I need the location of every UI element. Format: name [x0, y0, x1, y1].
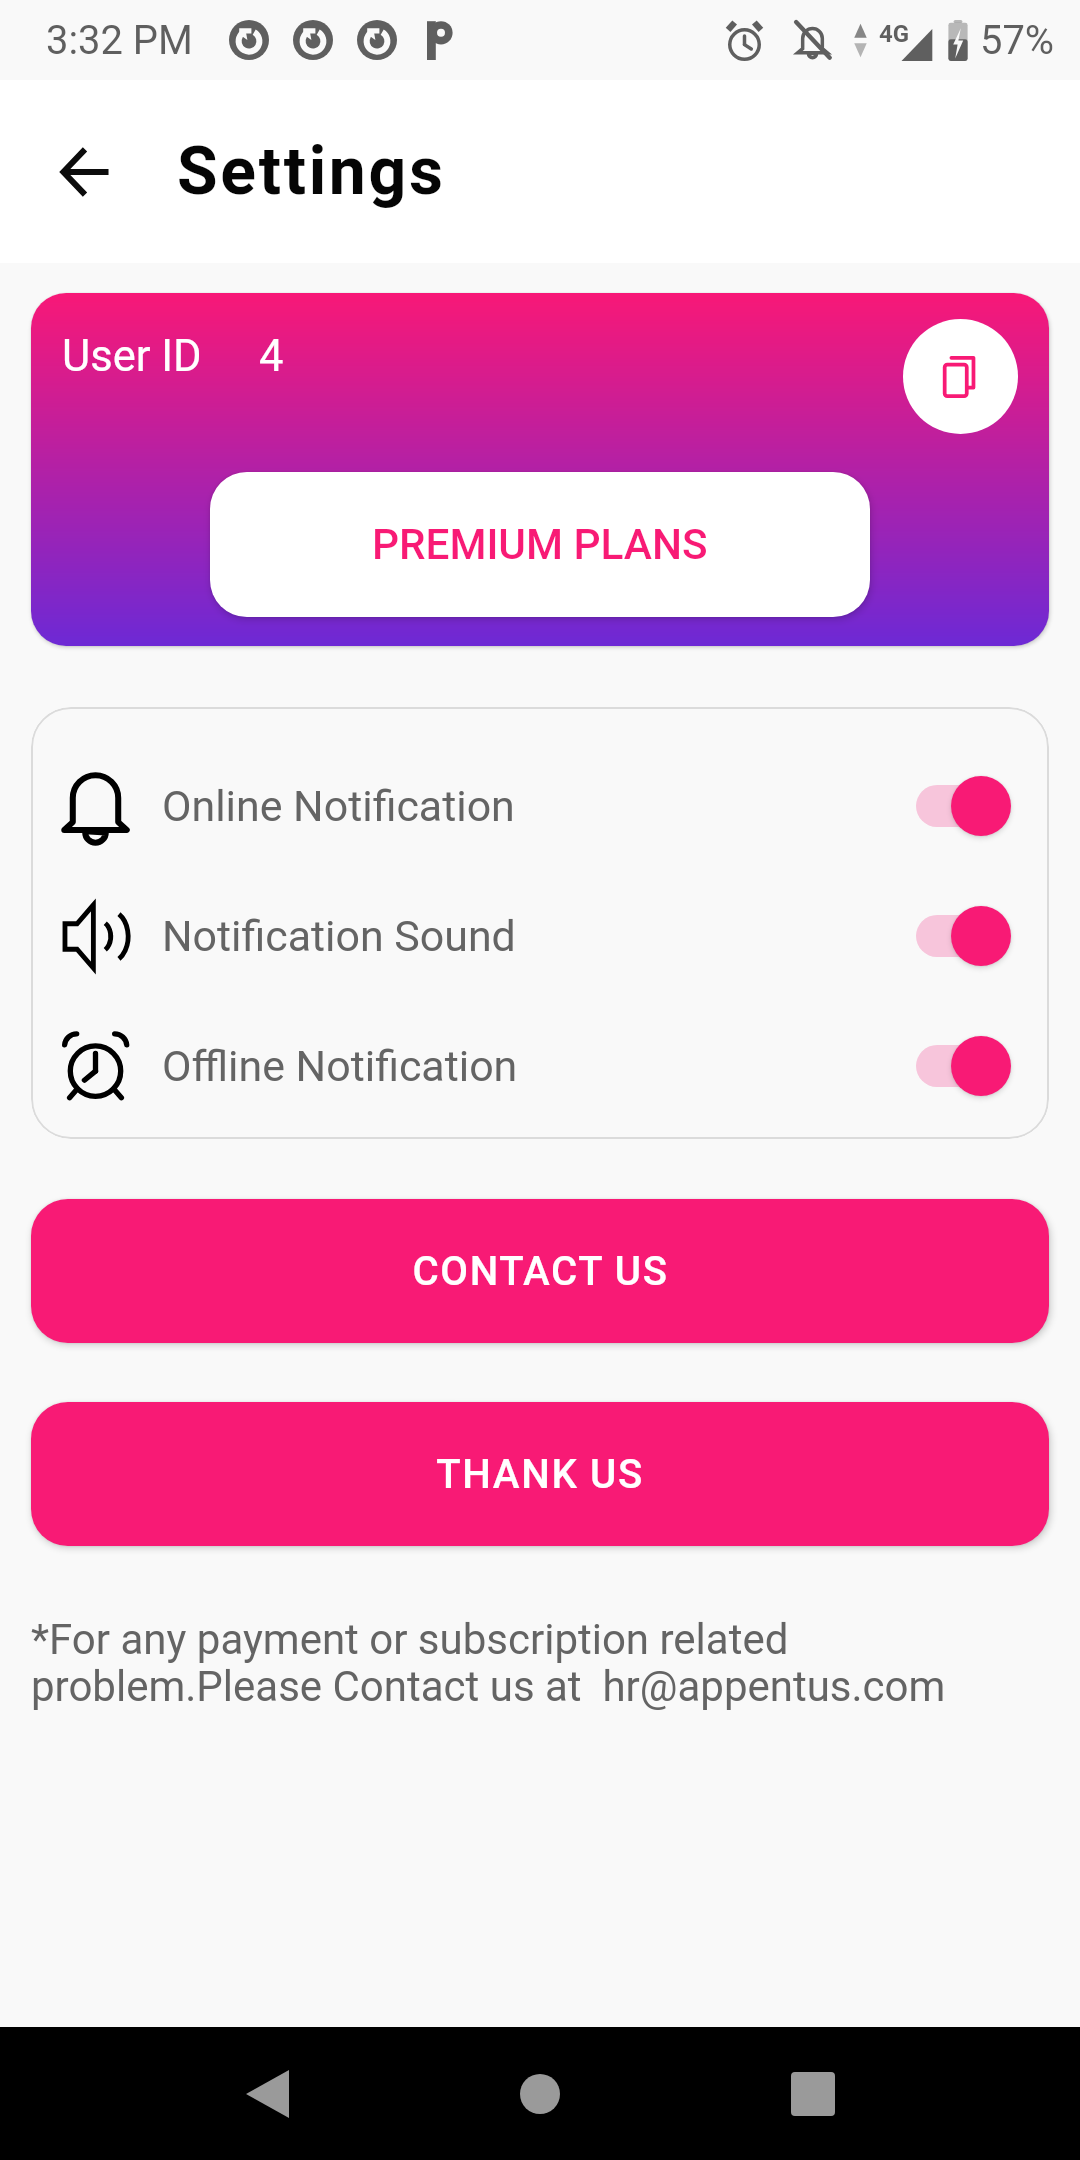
staticText: User ID — [62, 331, 202, 382]
button[interactable]: Toggle Online Notification — [916, 776, 1012, 836]
button[interactable]: Back — [201, 2028, 333, 2160]
staticText: Settings — [177, 133, 446, 210]
button[interactable]: Toggle Notification Sound — [916, 906, 1012, 966]
staticText: Offline Notification — [162, 1041, 518, 1091]
staticText: CONTACT US — [412, 1248, 669, 1295]
button[interactable]: Toggle Offline Notification — [916, 1036, 1012, 1096]
staticText: 4G — [879, 20, 910, 48]
button[interactable]: PREMIUM PLANS — [210, 472, 870, 617]
button[interactable]: Online Notification — [31, 741, 1049, 871]
button[interactable]: THANK US — [31, 1402, 1049, 1546]
staticText: 3:32 PM — [46, 17, 193, 64]
staticText: Online Notification — [162, 781, 515, 831]
button[interactable]: Back — [46, 133, 124, 211]
staticText: Notification Sound — [162, 911, 516, 961]
staticText: 57% — [980, 17, 1055, 64]
button[interactable]: Offline Notification — [31, 1001, 1049, 1131]
staticText: PREMIUM PLANS — [372, 520, 708, 570]
button[interactable]: Copy user ID — [903, 319, 1018, 434]
staticText: 4 — [259, 331, 284, 382]
button[interactable]: Notification Sound — [31, 871, 1049, 1001]
button[interactable]: Recents — [747, 2028, 879, 2160]
staticText: *For any payment or subscription related… — [31, 1615, 946, 1711]
button[interactable]: CONTACT US — [31, 1199, 1049, 1343]
staticText: THANK US — [436, 1451, 644, 1498]
button[interactable]: Home — [474, 2028, 606, 2160]
